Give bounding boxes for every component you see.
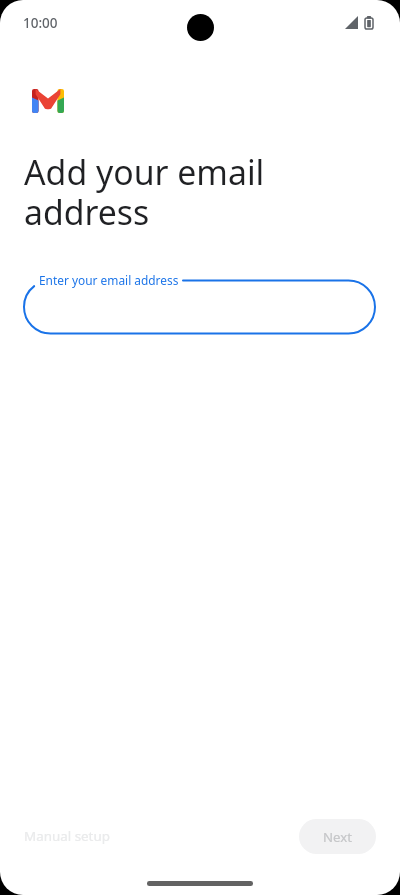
other: Gmail xyxy=(32,89,64,113)
other: Mobile signal xyxy=(345,16,358,29)
button[interactable]: Enter your email address xyxy=(24,272,376,334)
staticText: Next xyxy=(323,828,352,846)
staticText: Add your email address xyxy=(24,153,265,233)
staticText: 10:00 xyxy=(23,14,58,32)
other: Battery xyxy=(365,16,373,29)
button[interactable]: Manual setup xyxy=(12,820,122,852)
staticText: Enter your email address xyxy=(39,272,179,288)
staticText: Manual setup xyxy=(24,827,110,845)
button[interactable]: Next xyxy=(299,819,376,854)
